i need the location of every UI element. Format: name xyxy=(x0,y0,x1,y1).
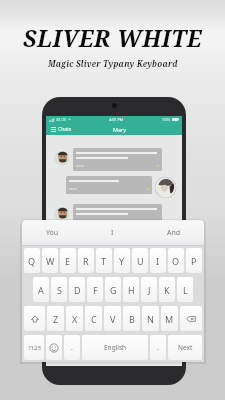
button[interactable]: K xyxy=(159,277,175,302)
button[interactable]: English xyxy=(82,335,148,360)
staticText: SLIVER WHITE xyxy=(23,22,202,53)
staticText: P xyxy=(191,255,197,267)
staticText: Next xyxy=(178,343,193,352)
button[interactable] xyxy=(73,148,162,171)
button[interactable]: O xyxy=(168,248,184,273)
staticText: S xyxy=(57,284,62,296)
staticText: Y xyxy=(119,255,125,267)
staticText: K xyxy=(164,284,170,296)
staticText: Magic Sliver Typany Keyboard xyxy=(48,58,178,69)
staticText: R xyxy=(83,255,89,267)
staticText: O xyxy=(172,255,180,267)
staticText: N xyxy=(147,313,154,325)
button[interactable]: U xyxy=(132,248,148,273)
staticText: L xyxy=(183,284,188,296)
staticText: U xyxy=(137,255,144,267)
button[interactable]: A xyxy=(33,277,49,302)
staticText: 4:01 PM xyxy=(109,117,124,122)
staticText: You xyxy=(46,228,59,238)
button[interactable]: You xyxy=(22,220,82,246)
staticText: A xyxy=(38,284,44,296)
button[interactable]: . xyxy=(150,335,166,360)
button[interactable]: Contact avatar xyxy=(154,176,177,199)
staticText: I xyxy=(111,228,114,238)
staticText: English xyxy=(104,343,127,352)
staticText: Mary xyxy=(113,126,127,133)
button[interactable]: J xyxy=(141,277,157,302)
staticText: ?123 xyxy=(28,344,41,352)
staticText: X xyxy=(72,313,78,325)
staticText: 4G LTE xyxy=(56,118,67,122)
button[interactable]: D xyxy=(69,277,85,302)
button[interactable]: Q xyxy=(24,248,40,273)
button[interactable]: C xyxy=(85,306,102,331)
staticText: G xyxy=(110,284,117,296)
staticText: I xyxy=(156,255,160,267)
staticText: Q xyxy=(28,255,36,267)
button[interactable]: I xyxy=(82,220,143,246)
button[interactable]: Contact avatar xyxy=(53,204,71,222)
button[interactable]: . xyxy=(64,335,80,360)
button[interactable]: R xyxy=(78,248,94,273)
staticText: E xyxy=(65,255,71,267)
button[interactable]: I xyxy=(150,248,166,273)
staticText: . xyxy=(157,343,159,353)
button[interactable]: T xyxy=(96,248,112,273)
staticText: B xyxy=(129,313,135,325)
button[interactable]: E xyxy=(60,248,76,273)
staticText: T xyxy=(101,255,107,267)
button[interactable]: Next xyxy=(168,335,202,360)
button[interactable]: S xyxy=(51,277,67,302)
button[interactable]: Shift xyxy=(24,306,45,331)
button[interactable]: G xyxy=(105,277,121,302)
button[interactable]: Contact avatar xyxy=(53,148,71,166)
staticText: V xyxy=(110,313,116,325)
staticText: D xyxy=(74,284,81,296)
button[interactable]: N xyxy=(142,306,159,331)
staticText: W xyxy=(46,255,55,267)
staticText: Z xyxy=(53,313,59,325)
button[interactable]: Z xyxy=(47,306,64,331)
button[interactable]: Emoji xyxy=(46,335,62,360)
button[interactable]: L xyxy=(177,277,193,302)
button[interactable]: ?123 xyxy=(24,335,44,360)
button[interactable]: F xyxy=(87,277,103,302)
button[interactable]: V xyxy=(104,306,121,331)
staticText: And xyxy=(167,228,181,238)
button[interactable]: P xyxy=(186,248,202,273)
button[interactable]: H xyxy=(123,277,139,302)
staticText: J xyxy=(148,284,151,296)
button[interactable]: X xyxy=(66,306,83,331)
button[interactable]: Y xyxy=(114,248,130,273)
button[interactable]: W xyxy=(42,248,58,273)
staticText: C xyxy=(91,313,97,325)
staticText: 100% xyxy=(162,118,171,122)
button[interactable]: And xyxy=(143,220,204,246)
button[interactable]: B xyxy=(123,306,140,331)
button[interactable] xyxy=(73,204,162,227)
button[interactable]: M xyxy=(161,306,178,331)
staticText: F xyxy=(93,284,98,296)
staticText: M xyxy=(165,313,174,325)
staticText: Chats xyxy=(58,126,72,133)
staticText: H xyxy=(128,284,135,296)
staticText: . xyxy=(71,343,73,353)
button[interactable]: Backspace xyxy=(180,306,202,331)
button[interactable] xyxy=(66,176,152,194)
button[interactable]: Menu xyxy=(49,123,57,135)
